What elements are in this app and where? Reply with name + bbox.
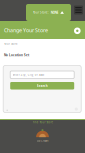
- staticText: No Location Set: [4, 53, 29, 57]
- button[interactable]: Menu: [74, 5, 83, 14]
- staticText: Enter Zip, City, or State: [13, 73, 45, 76]
- button[interactable]: Use my location: [73, 27, 81, 35]
- button[interactable]: Find Your Store: [32, 120, 52, 125]
- staticText: Your Store:: [33, 11, 49, 14]
- staticText: Ice Cream: [37, 139, 48, 143]
- staticText: NONE: [51, 10, 59, 14]
- staticText: Find Your Store: [32, 121, 52, 124]
- button[interactable]: Your Store:: [26, 4, 71, 21]
- button[interactable]: Search: [10, 82, 74, 89]
- staticText: Your Store: [4, 42, 18, 46]
- staticText: Change Your Store: [4, 26, 48, 34]
- staticText: Search: [37, 84, 48, 88]
